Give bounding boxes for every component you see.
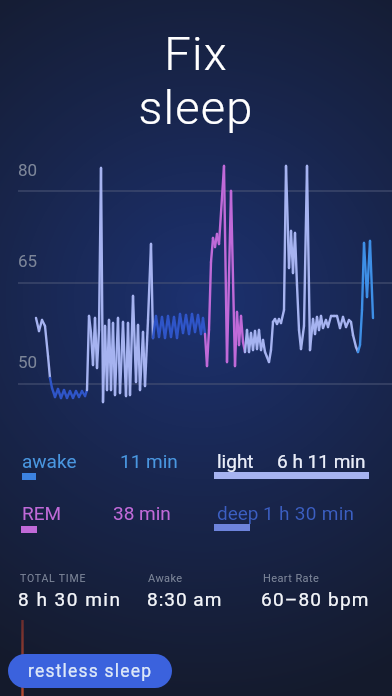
staticText: 1 h 30 min <box>263 502 355 524</box>
staticText: deep <box>217 502 259 524</box>
staticText: 6 h 11 min <box>277 450 366 472</box>
staticText: Fix sleep <box>0 26 392 135</box>
staticText: restless sleep <box>28 661 153 682</box>
button[interactable]: restless sleep <box>8 654 172 688</box>
staticText: REM <box>22 502 62 524</box>
staticText: Heart Rate <box>263 572 320 585</box>
staticText: Awake <box>148 572 183 585</box>
staticText: awake <box>22 450 77 472</box>
staticText: 38 min <box>113 502 171 524</box>
staticText: light <box>217 450 254 472</box>
staticText: 80 <box>18 160 38 180</box>
staticText: 8 h 30 min <box>18 588 122 610</box>
staticText: 11 min <box>120 450 178 472</box>
staticText: 8:30 am <box>147 588 223 610</box>
staticText: 50 <box>18 352 38 372</box>
staticText: TOTAL TIME <box>20 572 87 584</box>
staticText: 65 <box>18 251 38 271</box>
staticText: 60–80 bpm <box>261 588 370 610</box>
